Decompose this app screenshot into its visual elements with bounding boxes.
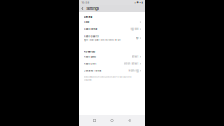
staticText: Container format <box>84 69 102 72</box>
staticText: compatible. <box>84 79 92 81</box>
button[interactable]: Back <box>80 6 85 11</box>
staticText: ▴ ● ▾ ▮ <box>135 1 143 4</box>
button[interactable]: About <box>79 19 145 26</box>
staticText: Audio Quality <box>84 35 99 38</box>
staticText: Audio Speed <box>84 55 96 58</box>
staticText: default <box>131 55 138 58</box>
staticText: Audio Limit <box>84 62 97 65</box>
staticText: High <box>135 37 138 39</box>
staticText: Audio Format <box>84 28 98 30</box>
button[interactable]: Home <box>110 118 114 122</box>
staticText: ogg opus <box>130 28 138 30</box>
staticText: webm/ogg <box>128 69 138 72</box>
button[interactable]: Audio Limit <box>79 60 145 67</box>
button[interactable]: Recent apps <box>92 118 96 122</box>
staticText: Advanced <box>84 50 96 53</box>
staticText: Some combinations of codecs and containe… <box>84 76 132 78</box>
staticText: About <box>84 21 90 23</box>
button[interactable]: Audio Quality <box>79 33 145 44</box>
staticText: 10:58 <box>81 1 89 4</box>
staticText: Settings <box>86 6 99 11</box>
button[interactable]: Audio Format <box>79 26 145 33</box>
staticText: General <box>84 16 93 19</box>
staticText: system default <box>123 62 138 65</box>
button[interactable]: Container format <box>79 67 145 74</box>
button[interactable]: Back <box>127 118 131 122</box>
staticText: Higher audio quality uses increased file… <box>84 39 121 41</box>
button[interactable]: Audio Speed <box>79 53 145 60</box>
